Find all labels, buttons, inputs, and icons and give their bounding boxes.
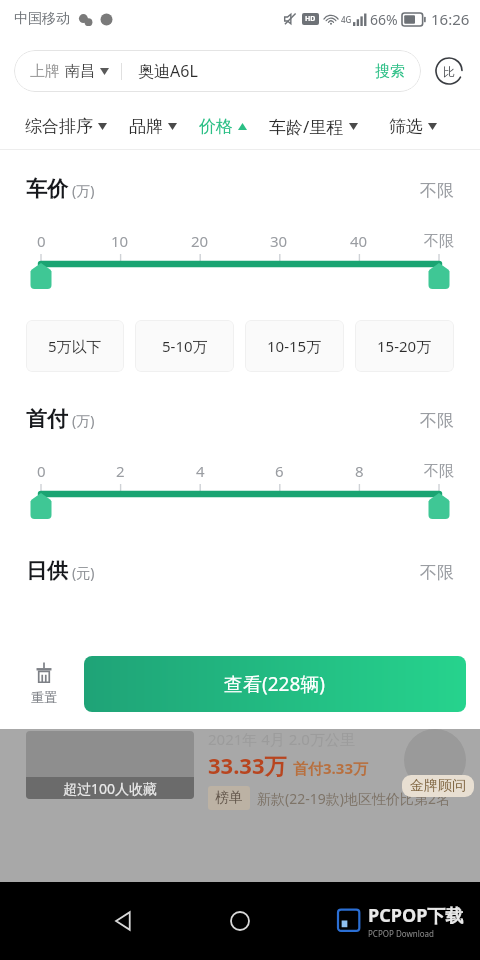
button[interactable]: 15-20万	[355, 320, 454, 372]
button[interactable]: 买车	[96, 881, 192, 960]
button[interactable]: 价格	[199, 104, 269, 149]
button[interactable]: 我的	[384, 881, 480, 960]
staticText: 金牌顾问	[410, 777, 466, 795]
staticText: 榜单	[215, 789, 243, 807]
button[interactable]: 品牌	[129, 104, 199, 149]
button[interactable]: 返回	[108, 905, 140, 937]
staticText: 66%	[370, 10, 398, 29]
staticText: 车价	[26, 176, 68, 202]
staticText: 10	[111, 231, 129, 251]
staticText: (元)	[72, 563, 95, 582]
staticText: 综合排序	[25, 116, 93, 137]
staticText: (万)	[72, 411, 95, 430]
staticText: 价格	[199, 116, 233, 137]
button[interactable]: 搜索	[359, 50, 421, 92]
staticText: 新款(22-19款)地区性价比第2名	[257, 789, 450, 808]
button[interactable]: 5万以下	[26, 320, 124, 372]
staticText: PCPOP Download	[368, 928, 434, 939]
button[interactable]: 10-15万	[245, 320, 344, 372]
button[interactable]: 首页	[0, 881, 96, 960]
staticText: 查看(228辆)	[224, 671, 326, 697]
staticText: 首付3.33万	[293, 758, 368, 778]
staticText: 不限	[420, 562, 454, 583]
staticText: 不限	[420, 180, 454, 201]
staticText: 4G	[341, 14, 352, 25]
staticText: 我的	[418, 927, 446, 945]
staticText: 16:26	[431, 9, 470, 29]
staticText: 不限	[424, 232, 454, 251]
staticText: 比	[443, 64, 455, 79]
button[interactable]: 卖车	[192, 881, 288, 960]
button[interactable]: 综合排序	[25, 104, 129, 149]
staticText: 买车	[130, 928, 158, 946]
staticText: 中国移动	[14, 10, 70, 28]
staticText: 收藏	[322, 928, 350, 946]
staticText: (万)	[72, 181, 95, 200]
staticText: 5-10万	[162, 336, 208, 356]
staticText: 10-15万	[267, 336, 322, 356]
staticText: 40	[350, 231, 368, 251]
staticText: HD	[305, 14, 316, 24]
staticText: 卖车	[226, 927, 254, 945]
button[interactable]: 上牌	[14, 50, 121, 92]
staticText: 南昌	[65, 62, 95, 81]
staticText: PCPOP下载	[368, 903, 464, 928]
staticText: 5万以下	[48, 336, 102, 356]
staticText: 不限	[424, 462, 454, 481]
staticText: 上牌	[30, 62, 60, 81]
staticText: 33.33万	[208, 750, 287, 780]
staticText: 车龄/里程	[269, 115, 344, 138]
staticText: 8	[355, 461, 364, 481]
staticText: 0	[37, 461, 46, 481]
button[interactable]: 收藏	[288, 881, 384, 960]
staticText: 品牌	[129, 116, 163, 137]
button[interactable]: 5-10万	[135, 320, 234, 372]
staticText: 2021年 4月 2.0万公里	[208, 729, 355, 749]
staticText: 筛选	[389, 116, 423, 137]
button[interactable]: 主屏幕	[224, 905, 256, 937]
staticText: 2	[116, 461, 125, 481]
button[interactable]: 筛选	[389, 104, 462, 149]
button[interactable]: 重置	[14, 638, 74, 729]
staticText: 4	[196, 461, 205, 481]
button[interactable]: 车龄/里程	[269, 104, 389, 149]
staticText: 首付	[26, 406, 68, 432]
staticText: 20	[191, 231, 209, 251]
staticText: 奥迪A6L	[138, 60, 359, 82]
staticText: 搜索	[375, 62, 405, 81]
staticText: 15-20万	[377, 336, 432, 356]
staticText: 不限	[420, 410, 454, 431]
staticText: 日供	[26, 558, 68, 584]
staticText: 超过100人收藏	[63, 779, 158, 798]
button[interactable]: 查看(228辆)	[84, 656, 466, 712]
staticText: 6	[275, 461, 284, 481]
button[interactable]: 对比	[432, 54, 466, 88]
staticText: 30	[270, 231, 288, 251]
staticText: 重置	[31, 689, 57, 705]
staticText: 0	[37, 231, 46, 251]
